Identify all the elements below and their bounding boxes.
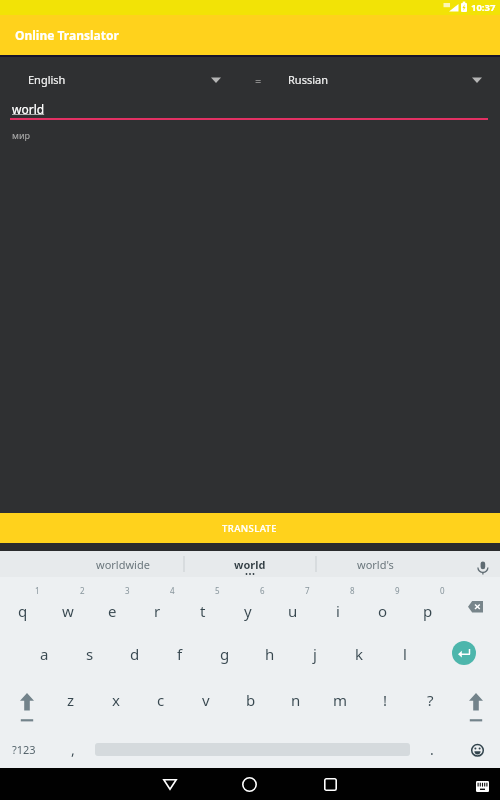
staticText: 1	[35, 585, 40, 596]
button[interactable]: English	[14, 63, 229, 95]
button[interactable]: Russian	[274, 63, 486, 95]
staticText: f	[177, 644, 183, 664]
staticText: c	[157, 690, 165, 710]
staticText: q	[18, 601, 28, 621]
button[interactable]: e	[90, 596, 135, 626]
staticText: n	[291, 690, 301, 710]
button[interactable]: s	[67, 639, 112, 669]
button[interactable]: u	[270, 596, 315, 626]
staticText: !	[383, 690, 388, 710]
button[interactable]: x	[93, 685, 138, 715]
staticText: z	[67, 690, 75, 710]
button[interactable]: h	[247, 639, 292, 669]
staticText: ?	[427, 690, 434, 710]
button[interactable]	[461, 734, 495, 764]
button[interactable]: world	[190, 551, 310, 577]
staticText: 7	[305, 585, 310, 596]
staticText: u	[288, 601, 298, 621]
staticText: world's	[357, 557, 394, 572]
button[interactable]: i	[315, 596, 360, 626]
button[interactable]: m	[318, 685, 363, 715]
staticText: .	[430, 740, 434, 759]
staticText: 4	[170, 585, 175, 596]
button[interactable]	[310, 768, 350, 800]
staticText: k	[355, 644, 364, 664]
button[interactable]: b	[228, 685, 273, 715]
button[interactable]: c	[138, 685, 183, 715]
staticText: o	[378, 601, 388, 621]
button[interactable]	[150, 768, 190, 800]
button[interactable]: world's	[315, 551, 435, 577]
staticText: v	[202, 690, 210, 710]
button[interactable]: .	[412, 734, 452, 764]
staticText: t	[200, 601, 206, 621]
button[interactable]: worldwide	[63, 551, 183, 577]
staticText: мир	[12, 129, 30, 141]
button[interactable]: v	[183, 685, 228, 715]
button[interactable]: a	[22, 639, 67, 669]
button[interactable]: w	[45, 596, 90, 626]
button[interactable]: n	[273, 685, 318, 715]
staticText: g	[220, 644, 230, 664]
button[interactable]	[452, 641, 476, 665]
button[interactable]	[229, 768, 269, 800]
staticText: 3	[125, 585, 130, 596]
staticText: y	[244, 601, 252, 621]
staticText: 0	[440, 585, 445, 596]
button[interactable]: y	[225, 596, 270, 626]
staticText: world	[12, 101, 45, 117]
button[interactable]	[468, 776, 496, 796]
staticText: Online Translator	[15, 27, 119, 43]
staticText: worldwide	[96, 557, 150, 572]
staticText: e	[108, 601, 117, 621]
staticText: ,	[71, 740, 75, 759]
button[interactable]: !	[363, 685, 408, 715]
staticText: a	[40, 644, 49, 664]
staticText: p	[423, 601, 433, 621]
staticText: Russian	[288, 72, 328, 87]
button[interactable]: l	[382, 639, 427, 669]
staticText: w	[62, 601, 74, 621]
button[interactable]: k	[337, 639, 382, 669]
button[interactable]: ,	[53, 734, 93, 764]
staticText: i	[336, 601, 340, 621]
staticText: x	[112, 690, 120, 710]
staticText: m	[333, 690, 348, 710]
button[interactable]	[4, 685, 49, 723]
staticText: d	[130, 644, 140, 664]
staticText: ?123	[12, 742, 36, 757]
staticText: 10:37	[471, 1, 496, 14]
button[interactable]: j	[292, 639, 337, 669]
button[interactable]: ?	[408, 685, 453, 715]
button[interactable]: r	[135, 596, 180, 626]
staticText: 2	[80, 585, 85, 596]
button[interactable]: f	[157, 639, 202, 669]
button[interactable]: t	[180, 596, 225, 626]
staticText: TRANSLATE	[222, 522, 278, 535]
button[interactable]: d	[112, 639, 157, 669]
staticText: 6	[260, 585, 265, 596]
button[interactable]: o	[360, 596, 405, 626]
button[interactable]: TRANSLATE	[0, 513, 500, 543]
button[interactable]: g	[202, 639, 247, 669]
staticText: r	[154, 601, 161, 621]
staticText: world	[234, 557, 266, 572]
button[interactable]: z	[48, 685, 93, 715]
button[interactable]: q	[0, 596, 45, 626]
staticText: 9	[395, 585, 400, 596]
staticText: l	[403, 644, 407, 664]
button[interactable]	[453, 592, 498, 622]
button[interactable]	[453, 685, 498, 723]
staticText: 8	[350, 585, 355, 596]
staticText: j	[313, 644, 317, 664]
staticText: s	[86, 644, 94, 664]
staticText: English	[28, 72, 66, 87]
staticText: h	[265, 644, 275, 664]
button[interactable]: p	[405, 596, 450, 626]
button[interactable]: ?123	[2, 734, 46, 764]
staticText: 5	[215, 585, 220, 596]
staticText: =	[255, 73, 262, 88]
staticText: b	[246, 690, 256, 710]
